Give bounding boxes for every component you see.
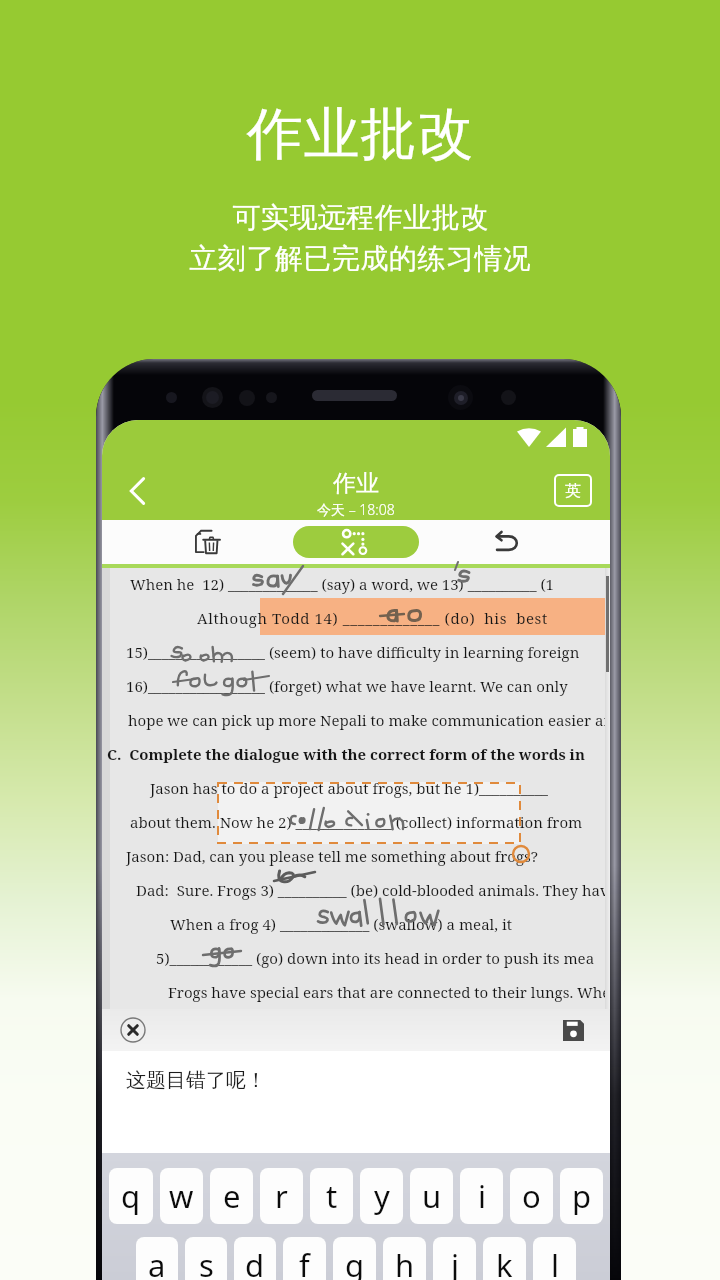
button[interactable]: t: [310, 1168, 353, 1224]
staticText: C. Complete the dialogue with the correc…: [107, 744, 610, 764]
button[interactable]: y: [360, 1168, 403, 1224]
staticText: 今天 – 18:08: [317, 500, 395, 519]
button[interactable]: 英: [554, 474, 592, 507]
button[interactable]: g: [333, 1237, 376, 1280]
staticText: d: [245, 1244, 265, 1280]
button[interactable]: Delete page: [184, 520, 228, 564]
button[interactable]: f: [283, 1237, 326, 1280]
button[interactable]: p: [560, 1168, 603, 1224]
staticText: Jason has to do a project about frogs, b…: [150, 778, 548, 798]
staticText: w: [169, 1175, 194, 1217]
staticText: q: [121, 1175, 141, 1217]
button[interactable]: Mark homework: [293, 526, 419, 558]
staticText: j: [451, 1244, 459, 1280]
button[interactable]: e: [210, 1168, 253, 1224]
button[interactable]: Close: [120, 1017, 146, 1043]
staticText: p: [572, 1175, 592, 1217]
staticText: s: [199, 1244, 214, 1280]
staticText: hope we can pick up more Nepali to make …: [128, 710, 610, 730]
staticText: e: [223, 1175, 241, 1217]
button[interactable]: q: [109, 1168, 153, 1224]
staticText: i: [478, 1175, 486, 1217]
button[interactable]: w: [160, 1168, 203, 1224]
staticText: 这题目错了呢！: [126, 1068, 266, 1093]
button[interactable]: l: [533, 1237, 576, 1280]
staticText: h: [395, 1244, 415, 1280]
staticText: k: [496, 1244, 513, 1280]
staticText: Although Todd 14) _____________ (do) his…: [197, 608, 548, 628]
button[interactable]: j: [433, 1237, 476, 1280]
button[interactable]: k: [483, 1237, 526, 1280]
button[interactable]: d: [234, 1237, 276, 1280]
staticText: r: [275, 1175, 288, 1217]
staticText: t: [326, 1175, 338, 1217]
staticText: 5)____________ (go) down into its head i…: [156, 948, 595, 968]
staticText: u: [422, 1175, 442, 1217]
staticText: 作业: [333, 469, 379, 498]
staticText: Jason: Dad, can you please tell me somet…: [126, 846, 538, 866]
staticText: f: [299, 1244, 310, 1280]
staticText: o: [522, 1175, 541, 1217]
staticText: 作业批改: [246, 99, 474, 170]
staticText: Frogs have special ears that are connect…: [168, 982, 610, 1002]
staticText: a: [148, 1244, 166, 1280]
staticText: 可实现远程作业批改: [232, 200, 489, 235]
button[interactable]: i: [460, 1168, 503, 1224]
button[interactable]: Undo: [484, 520, 528, 564]
staticText: 英: [565, 481, 581, 501]
staticText: y: [374, 1175, 390, 1217]
staticText: 16)_________________ (forget) what we ha…: [126, 676, 568, 696]
button[interactable]: Save: [563, 1020, 584, 1041]
staticText: l: [551, 1244, 559, 1280]
button[interactable]: h: [383, 1237, 426, 1280]
staticText: about them. Now he 2) ______________ (co…: [130, 812, 583, 832]
staticText: When he 12) _____________ (say) a word, …: [130, 574, 555, 594]
button[interactable]: u: [410, 1168, 453, 1224]
staticText: g: [345, 1244, 365, 1280]
button[interactable]: Back: [114, 467, 162, 515]
button[interactable]: r: [260, 1168, 303, 1224]
staticText: 立刻了解已完成的练习情况: [189, 241, 531, 276]
staticText: 15)_________________ (seem) to have diff…: [126, 642, 580, 662]
button[interactable]: s: [185, 1237, 227, 1280]
staticText: Dad: Sure. Frogs 3) __________ (be) cold…: [136, 880, 610, 900]
button[interactable]: o: [510, 1168, 553, 1224]
staticText: When a frog 4) _____________ (swallow) a…: [170, 914, 512, 934]
button[interactable]: a: [136, 1237, 178, 1280]
